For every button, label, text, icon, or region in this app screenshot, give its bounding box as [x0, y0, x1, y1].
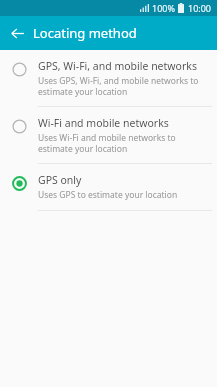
button[interactable]: Wi-Fi and mobile networks: [0, 107, 217, 163]
button[interactable]: Back: [8, 24, 26, 42]
button[interactable]: GPS only: [0, 164, 217, 210]
staticText: GPS, Wi-Fi, and mobile networks: [38, 59, 197, 73]
button[interactable]: GPS, Wi-Fi, and mobile networks: [0, 50, 217, 106]
staticText: Uses GPS to estimate your location: [38, 189, 178, 201]
staticText: GPS only: [38, 173, 82, 187]
staticText: 10:00: [188, 2, 212, 14]
staticText: Locating method: [33, 24, 137, 42]
staticText: Uses GPS, Wi-Fi, and mobile networks to …: [38, 75, 209, 97]
staticText: Wi-Fi and mobile networks: [38, 116, 169, 130]
staticText: Uses Wi-Fi and mobile networks to estima…: [38, 132, 209, 154]
staticText: 100%: [152, 2, 175, 14]
